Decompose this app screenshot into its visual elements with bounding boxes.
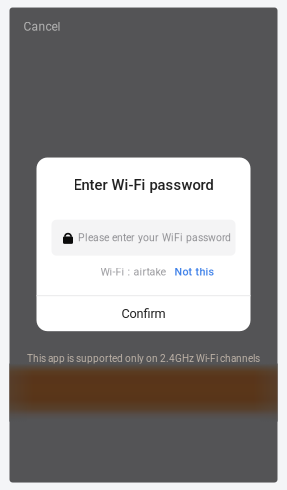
staticText: Cancel: [23, 19, 60, 34]
staticText: Not this: [174, 266, 213, 278]
staticText: Please enter your WiFi password: [78, 232, 231, 244]
staticText: Wi-Fi : airtake: [100, 266, 166, 278]
button[interactable]: Cancel: [19, 16, 64, 37]
staticText: Confirm: [121, 306, 165, 321]
button[interactable]: Not this: [174, 266, 213, 278]
button[interactable]: Confirm: [36, 296, 250, 331]
staticText: This app is supported only on 2.4GHz Wi-…: [27, 353, 260, 364]
staticText: Enter Wi-Fi password: [73, 176, 213, 194]
